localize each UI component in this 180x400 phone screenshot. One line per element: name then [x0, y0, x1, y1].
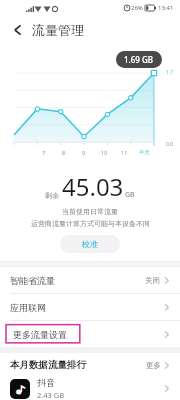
staticText: 8: [62, 149, 66, 156]
staticText: 13:41: [158, 4, 174, 12]
button[interactable]: 抖音: [0, 377, 180, 400]
staticText: GB: [125, 190, 135, 200]
staticText: 更多流量设置: [13, 329, 67, 340]
staticText: 当前使用日常流量: [62, 207, 118, 216]
button[interactable]: 更多流量设置: [0, 321, 180, 347]
staticText: 45.03: [62, 170, 124, 203]
staticText: 11: [121, 149, 128, 156]
staticText: 关闭: [145, 276, 160, 285]
button[interactable]: 本月数据流量排行: [0, 353, 180, 377]
staticText: 流量管理: [32, 22, 84, 38]
button[interactable]: 校准: [60, 235, 120, 253]
staticText: 7: [42, 149, 46, 156]
button[interactable]: 应用联网: [0, 294, 180, 320]
staticText: 剩余: [45, 191, 59, 200]
button[interactable]: 智能省流量: [0, 267, 180, 293]
staticText: 抖音: [37, 377, 55, 388]
staticText: 本月数据流量排行: [10, 359, 86, 371]
staticText: 智能省流量: [10, 275, 55, 286]
staticText: 2.43 GB: [37, 390, 65, 400]
staticText: 运营商流量计算方式可能与本设备不同: [31, 219, 150, 228]
staticText: 校准: [82, 239, 98, 249]
button[interactable]: Back: [8, 20, 28, 40]
staticText: 26%: [131, 4, 143, 12]
staticText: 0.0: [166, 141, 174, 148]
staticText: 1.7: [166, 69, 174, 76]
staticText: 更多: [146, 361, 161, 370]
staticText: 10: [101, 149, 108, 156]
staticText: 应用联网: [10, 302, 46, 313]
staticText: 1.69 GB: [124, 54, 154, 65]
staticText: 今天: [139, 149, 150, 156]
staticText: 9: [82, 149, 86, 156]
